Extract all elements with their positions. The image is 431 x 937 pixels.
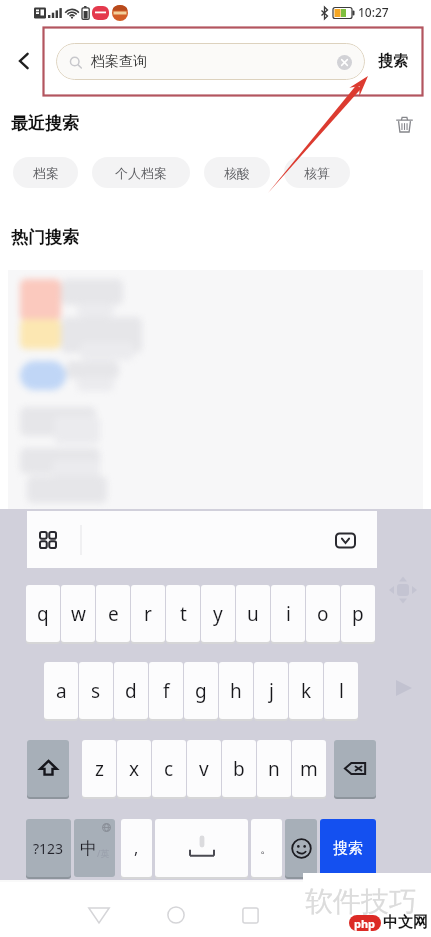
button[interactable]: g — [184, 662, 218, 719]
staticText: 核酸 — [224, 165, 250, 181]
button[interactable]: x — [117, 740, 151, 797]
staticText: 10:27 — [358, 4, 389, 20]
staticText: 热门搜索 — [11, 227, 79, 248]
button[interactable]: v — [187, 740, 221, 797]
button[interactable]: a — [44, 662, 78, 719]
button[interactable]: 个人档案 — [92, 157, 190, 188]
staticText: 档案 — [33, 165, 59, 181]
staticText: 个人档案 — [115, 165, 167, 181]
button[interactable]: r — [131, 585, 165, 642]
button[interactable]: f — [149, 662, 183, 719]
staticText: php — [354, 916, 376, 931]
staticText: f — [163, 678, 170, 704]
button[interactable]: l — [324, 662, 358, 719]
button[interactable]: c — [152, 740, 186, 797]
button[interactable]: h — [219, 662, 253, 719]
staticText: i — [286, 601, 291, 627]
staticText: x — [129, 756, 140, 782]
staticText: j — [269, 678, 274, 704]
button[interactable]: Clear search history — [390, 110, 418, 138]
staticText: 搜索 — [333, 839, 363, 858]
button[interactable]: o — [306, 585, 340, 642]
button[interactable]: d — [114, 662, 148, 719]
staticText: b — [233, 756, 245, 782]
staticText: v — [199, 756, 209, 782]
staticText: 档案查询 — [91, 53, 147, 71]
staticText: , — [134, 837, 139, 859]
button[interactable]: u — [236, 585, 270, 642]
button[interactable]: t — [166, 585, 200, 642]
staticText: y — [213, 601, 223, 627]
button[interactable]: 搜索 — [320, 819, 376, 877]
button[interactable]: w — [61, 585, 95, 642]
staticText: a — [56, 678, 67, 704]
button[interactable]: Hide keyboard — [330, 525, 360, 555]
button[interactable]: 。 — [251, 819, 282, 877]
button[interactable]: Symbols — [26, 819, 71, 877]
button[interactable]: Shift — [27, 740, 69, 797]
button[interactable]: p — [341, 585, 375, 642]
staticText: z — [95, 756, 104, 782]
button[interactable]: Clear text — [334, 52, 354, 72]
button[interactable]: Backspace — [334, 740, 376, 797]
button[interactable]: b — [222, 740, 256, 797]
staticText: 最近搜索 — [11, 113, 79, 134]
button[interactable]: q — [26, 585, 60, 642]
button[interactable]: 搜索 — [374, 48, 412, 75]
staticText: r — [144, 601, 152, 627]
button[interactable]: 档案查询 — [56, 43, 365, 80]
button[interactable]: i — [271, 585, 305, 642]
staticText: 软件技巧 — [305, 884, 417, 919]
staticText: s — [91, 678, 101, 704]
button[interactable]: m — [292, 740, 326, 797]
staticText: ?123 — [33, 839, 64, 858]
button[interactable]: Home — [160, 899, 192, 931]
button[interactable]: Switch language — [74, 819, 115, 877]
button[interactable]: z — [82, 740, 116, 797]
staticText: k — [301, 678, 312, 704]
staticText: t — [180, 601, 187, 627]
staticText: o — [317, 601, 329, 627]
staticText: n — [268, 756, 280, 782]
staticText: u — [247, 601, 259, 627]
button[interactable]: y — [201, 585, 235, 642]
staticText: d — [125, 678, 137, 704]
staticText: 中文网 — [383, 913, 428, 932]
staticText: q — [37, 601, 49, 627]
staticText: w — [71, 601, 86, 627]
button[interactable]: Space — [155, 819, 248, 877]
staticText: h — [230, 678, 242, 704]
staticText: l — [339, 678, 344, 704]
button[interactable]: Back — [8, 45, 40, 77]
button[interactable]: s — [79, 662, 113, 719]
button[interactable]: 核酸 — [204, 157, 270, 188]
staticText: /英 — [97, 847, 110, 859]
staticText: p — [352, 601, 364, 627]
staticText: c — [164, 756, 174, 782]
button[interactable]: 档案 — [13, 157, 78, 188]
button[interactable]: Back — [83, 899, 115, 931]
staticText: g — [195, 678, 207, 704]
staticText: 中 — [80, 838, 97, 859]
button[interactable]: n — [257, 740, 291, 797]
button[interactable]: Emoji — [285, 819, 317, 877]
staticText: 。 — [260, 840, 273, 856]
button[interactable]: , — [121, 819, 152, 877]
staticText: 核算 — [304, 165, 330, 181]
button[interactable]: Keyboard layouts — [33, 525, 63, 555]
button[interactable]: 核算 — [284, 157, 350, 188]
button[interactable]: k — [289, 662, 323, 719]
button[interactable]: e — [96, 585, 130, 642]
staticText: 搜索 — [378, 52, 408, 71]
staticText: m — [300, 756, 318, 782]
button[interactable]: Recent apps — [234, 899, 266, 931]
button[interactable]: j — [254, 662, 288, 719]
staticText: e — [108, 601, 119, 627]
